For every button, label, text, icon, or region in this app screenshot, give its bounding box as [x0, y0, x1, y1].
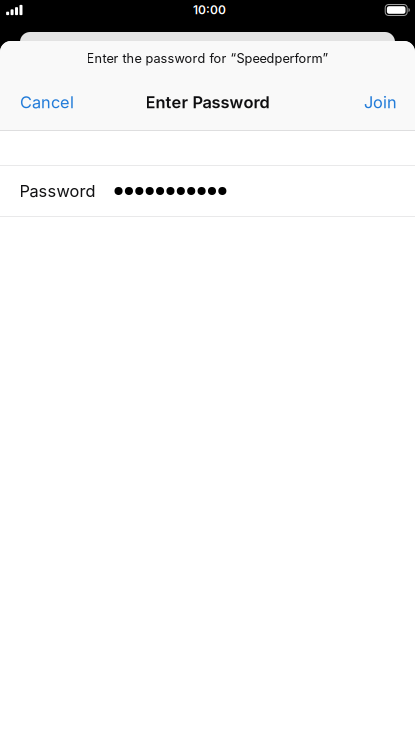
staticText: Password [19, 181, 95, 201]
staticText: Enter Password [145, 92, 269, 112]
staticText: Cancel [20, 92, 74, 112]
button[interactable]: Join [350, 84, 415, 120]
staticText: 10:00 [193, 3, 226, 17]
button[interactable]: Cancel [0, 84, 88, 120]
button[interactable]: Password [0, 164, 415, 214]
staticText: Join [364, 92, 397, 112]
staticText: Enter the password for “Speedperform” [86, 51, 328, 66]
